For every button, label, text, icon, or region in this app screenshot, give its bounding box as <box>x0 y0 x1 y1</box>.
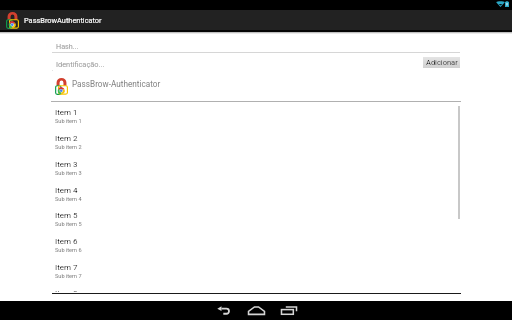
staticText: Item 1 <box>55 108 78 117</box>
staticText: Sub item 5 <box>55 221 82 228</box>
staticText: Hash... <box>56 42 79 50</box>
staticText: Identificação... <box>56 60 105 69</box>
staticText: Item 2 <box>55 134 78 143</box>
staticText: Sub item 6 <box>55 247 82 254</box>
button[interactable]: Item 4 <box>51 181 461 207</box>
staticText: Item 6 <box>55 237 78 246</box>
button[interactable]: Item 7 <box>51 258 461 284</box>
staticText: PassBrowAuthenticator <box>24 16 102 25</box>
button[interactable]: Item 1 <box>51 103 461 129</box>
button[interactable]: Item 3 <box>51 155 461 181</box>
staticText: Adicionar <box>426 58 458 67</box>
staticText: Item 3 <box>55 160 78 169</box>
staticText: Sub item 1 <box>55 118 82 125</box>
button[interactable]: Hash... <box>52 41 460 53</box>
button[interactable]: Item 2 <box>51 129 461 155</box>
staticText: Item 7 <box>55 263 78 272</box>
staticText: Sub item 7 <box>55 273 82 280</box>
staticText: Item 5 <box>55 211 78 220</box>
staticText: PassBrow-Authenticator <box>72 79 161 89</box>
button[interactable]: PassBrow-Authenticator <box>51 75 461 95</box>
button[interactable]: Item 6 <box>51 232 461 258</box>
staticText: Item 8 <box>55 289 78 292</box>
button[interactable]: PassBrowAuthenticator <box>0 10 512 30</box>
button[interactable]: Back <box>215 301 234 320</box>
button[interactable]: Adicionar <box>423 57 460 68</box>
staticText: Sub item 3 <box>55 170 82 177</box>
button[interactable]: Home <box>247 301 266 320</box>
staticText: Sub item 2 <box>55 144 82 151</box>
button[interactable]: Item 8 <box>51 284 461 292</box>
button[interactable]: Recent apps <box>279 301 298 320</box>
button[interactable]: Identificação... <box>52 58 417 70</box>
button[interactable]: Item 5 <box>51 206 461 232</box>
staticText: Sub item 4 <box>55 196 82 203</box>
staticText: Item 4 <box>55 186 78 195</box>
